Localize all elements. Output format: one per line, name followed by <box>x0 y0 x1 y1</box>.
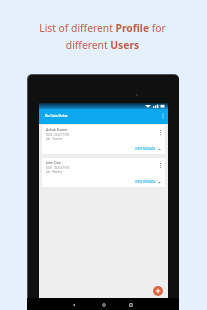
button[interactable]: Recents <box>125 299 137 310</box>
staticText: VIEW BIODATA <box>135 147 156 151</box>
button[interactable]: John Doe <box>42 158 165 187</box>
staticText: List of different Profile for different … <box>28 21 177 52</box>
button[interactable]: Ashok Kumar <box>42 125 165 154</box>
button[interactable]: Options <box>156 127 165 137</box>
button[interactable]: Options <box>156 160 165 170</box>
button[interactable]: Back <box>68 299 80 310</box>
staticText: John Doe <box>46 160 61 165</box>
button[interactable]: Home <box>98 299 110 310</box>
staticText: VIEW BIODATA <box>135 180 156 184</box>
staticText: Job : Teacher <box>46 137 63 141</box>
staticText: Bio Data Maker <box>45 114 68 118</box>
button[interactable]: VIEW BIODATA <box>133 145 163 153</box>
staticText: DOB : 04/04/1993 <box>46 166 70 170</box>
staticText: Job : Worker <box>46 170 62 174</box>
button[interactable]: Add profile <box>153 286 163 296</box>
button[interactable]: More options <box>157 108 168 123</box>
button[interactable]: VIEW BIODATA <box>133 178 163 186</box>
staticText: DOB : 26/07/1996 <box>46 133 70 137</box>
staticText: Ashok Kumar <box>46 127 68 132</box>
